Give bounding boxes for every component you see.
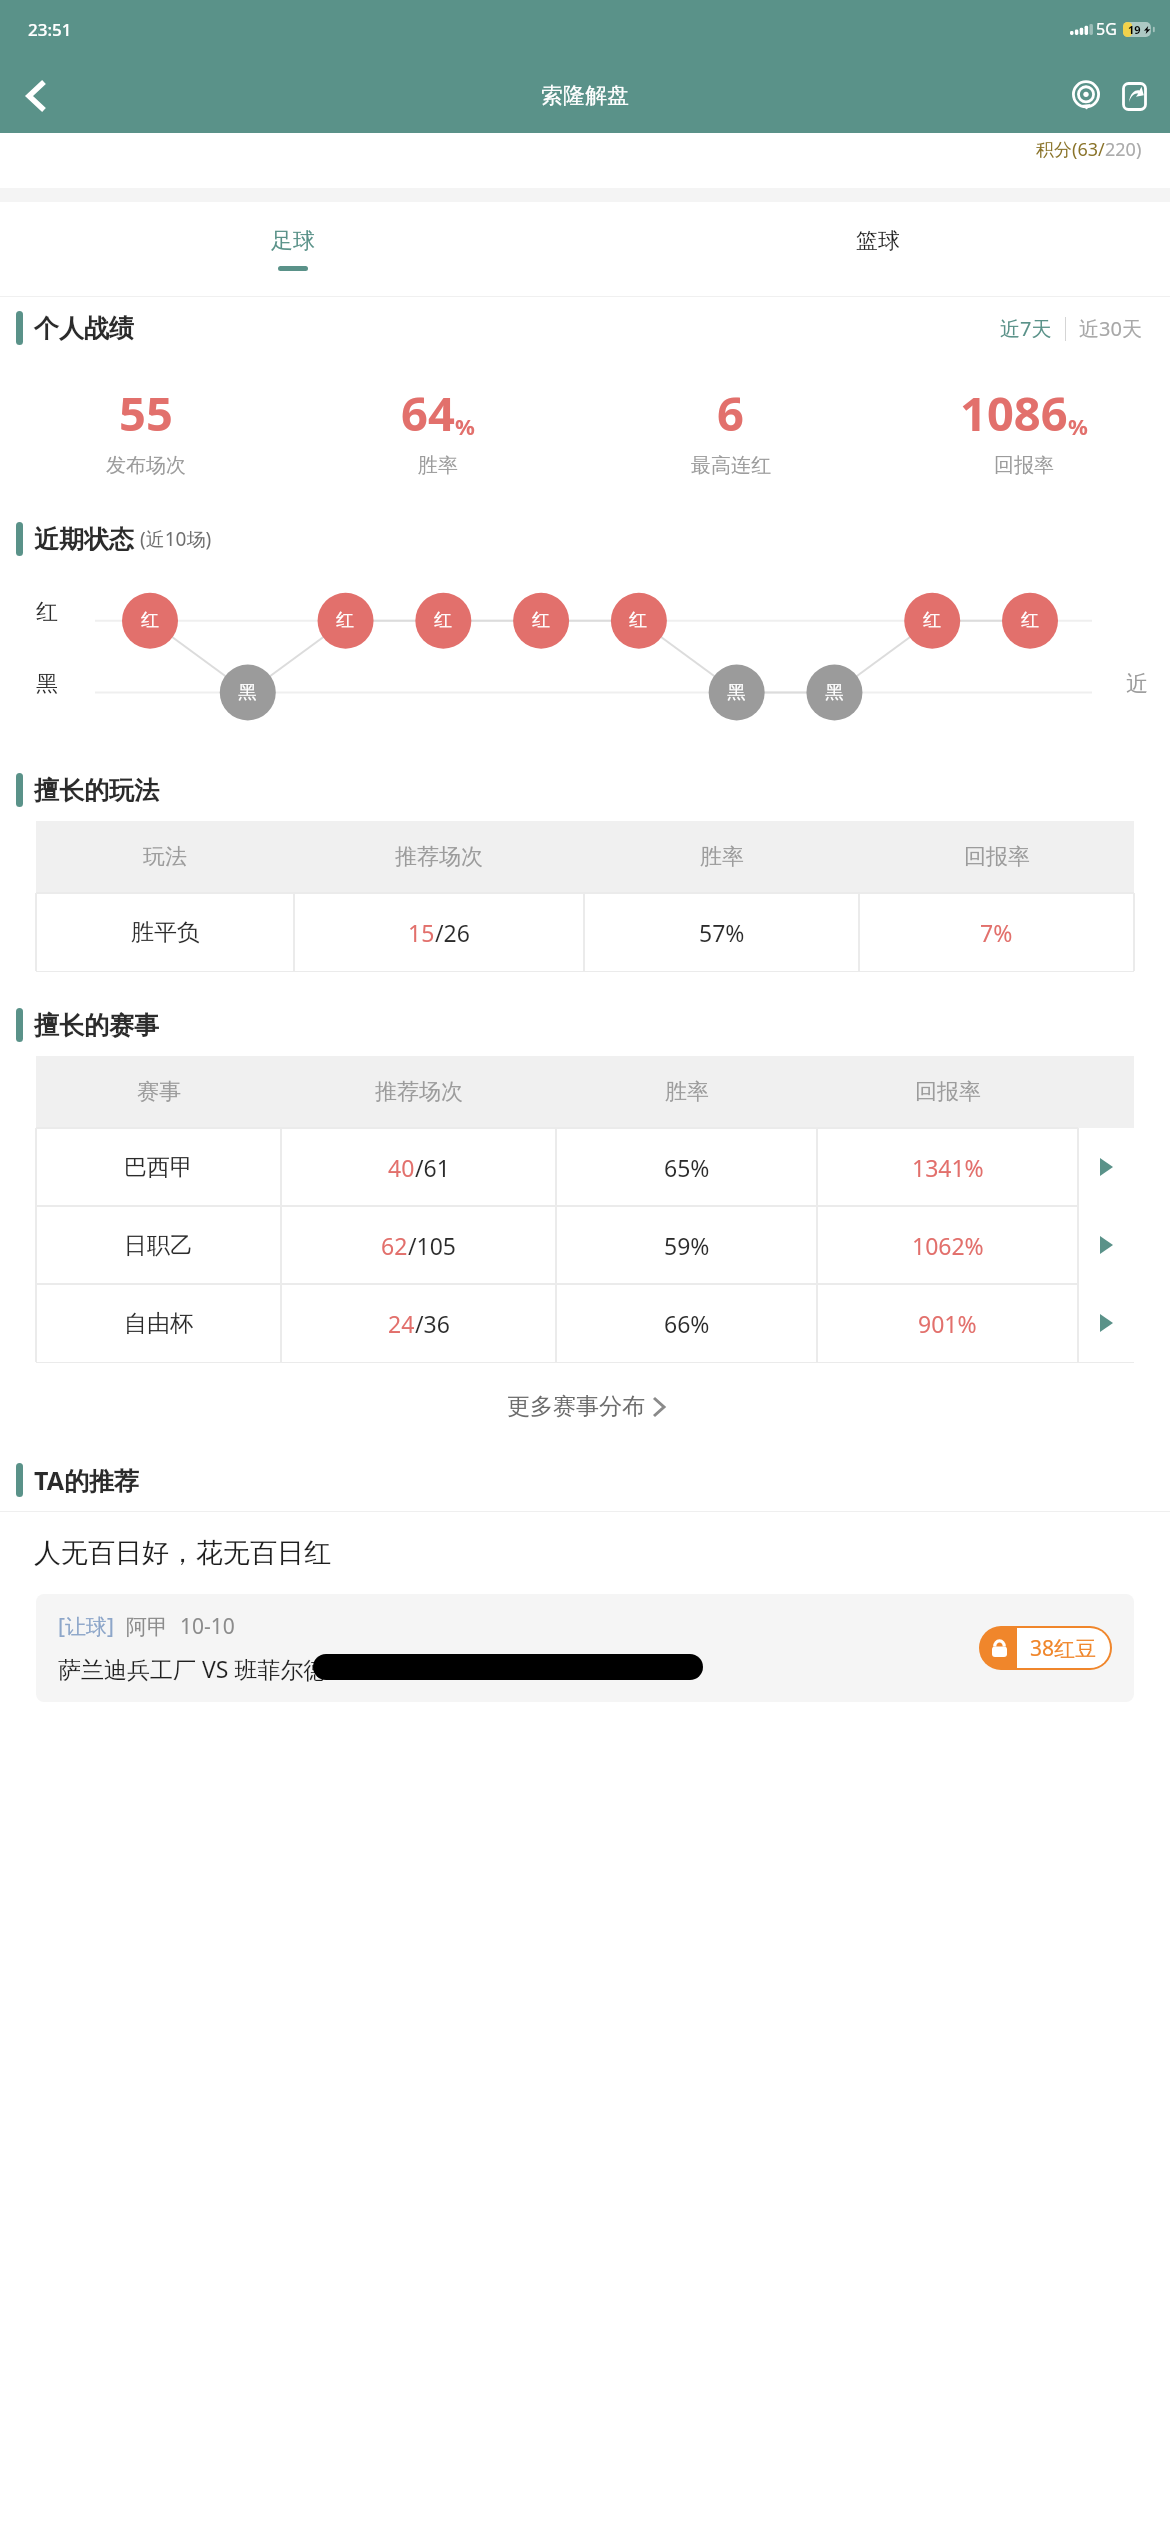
- staticText: 红: [923, 609, 941, 632]
- staticText: 220): [1105, 137, 1142, 162]
- staticText: 胜率: [700, 843, 744, 871]
- staticText: 近30天: [1079, 315, 1142, 342]
- staticText: 胜平负: [131, 918, 200, 947]
- staticText: 6: [717, 381, 744, 445]
- staticText: 55: [119, 381, 173, 445]
- staticText: /105: [408, 1230, 457, 1261]
- staticText: 萨兰迪兵工厂 VS 班菲尔德: [58, 1653, 327, 1684]
- staticText: 黑: [825, 681, 843, 704]
- staticText: 1086: [960, 381, 1068, 445]
- staticText: 5G: [1096, 18, 1117, 40]
- staticText: /36: [415, 1308, 450, 1339]
- staticText: 近期状态: [34, 524, 134, 555]
- staticText: 最高连红: [691, 453, 771, 478]
- staticText: 红: [629, 609, 647, 632]
- button[interactable]: Share: [1110, 72, 1158, 120]
- staticText: 40: [388, 1152, 415, 1183]
- staticText: 19: [1128, 22, 1141, 37]
- button[interactable]: 胜平负: [36, 893, 1134, 971]
- staticText: 擅长的赛事: [34, 1010, 159, 1041]
- staticText: 更多赛事分布: [507, 1392, 645, 1421]
- staticText: /61: [415, 1152, 450, 1183]
- staticText: %: [1068, 411, 1088, 441]
- staticText: 日职乙: [124, 1231, 193, 1260]
- button[interactable]: 近30天: [1075, 315, 1146, 342]
- staticText: 红: [36, 598, 58, 626]
- staticText: 玩法: [143, 843, 187, 871]
- staticText: 红: [141, 609, 159, 632]
- staticText: 近: [1126, 670, 1148, 698]
- staticText: 黑: [36, 670, 58, 698]
- staticText: 回报率: [994, 453, 1054, 478]
- staticText: 1341%: [912, 1152, 984, 1183]
- staticText: 7%: [980, 917, 1013, 948]
- staticText: 红: [532, 609, 550, 632]
- button[interactable]: Back: [10, 70, 62, 122]
- staticText: 胜率: [665, 1078, 709, 1106]
- staticText: 回报率: [915, 1078, 981, 1106]
- staticText: 红: [336, 609, 354, 632]
- staticText: 57%: [699, 917, 745, 948]
- staticText: 索隆解盘: [541, 82, 629, 110]
- staticText: 10-10: [180, 1612, 235, 1641]
- staticText: 901%: [918, 1308, 977, 1339]
- staticText: 阿甲: [126, 1614, 168, 1640]
- staticText: 推荐场次: [375, 1078, 463, 1106]
- staticText: /26: [435, 917, 470, 948]
- staticText: 推荐场次: [395, 843, 483, 871]
- button[interactable]: 更多赛事分布: [0, 1363, 1170, 1449]
- staticText: 篮球: [856, 227, 900, 255]
- staticText: %: [455, 411, 475, 441]
- staticText: 64: [401, 381, 455, 445]
- staticText: 1062%: [912, 1230, 984, 1261]
- button[interactable]: 巴西甲: [36, 1128, 1134, 1206]
- staticText: [让球]: [58, 1612, 114, 1641]
- staticText: 擅长的玩法: [34, 775, 159, 806]
- button[interactable]: Message: [1062, 72, 1110, 120]
- staticText: 黑: [238, 681, 256, 704]
- button[interactable]: 篮球: [585, 202, 1170, 296]
- staticText: 66%: [664, 1308, 710, 1339]
- staticText: 自由杯: [124, 1309, 193, 1338]
- staticText: 发布场次: [106, 453, 186, 478]
- staticText: (近10场): [140, 526, 212, 552]
- staticText: 05:00: [337, 1653, 396, 1684]
- staticText: 23:51: [28, 18, 72, 41]
- button[interactable]: 日职乙: [36, 1206, 1134, 1284]
- staticText: 24: [388, 1308, 415, 1339]
- staticText: 红: [1021, 609, 1039, 632]
- button[interactable]: 近7天: [996, 315, 1056, 342]
- staticText: 巴西甲: [124, 1153, 193, 1182]
- staticText: 足球: [271, 227, 315, 255]
- button[interactable]: 足球: [0, 202, 585, 296]
- staticText: 赛事: [137, 1078, 181, 1106]
- staticText: 红: [434, 609, 452, 632]
- staticText: 38红豆: [1030, 1634, 1097, 1663]
- staticText: TA的推荐: [34, 1463, 139, 1497]
- staticText: 黑: [727, 681, 745, 704]
- button[interactable]: [让球]: [36, 1594, 1134, 1702]
- staticText: 65%: [664, 1152, 710, 1183]
- staticText: 近7天: [1000, 315, 1052, 342]
- staticText: 回报率: [964, 843, 1030, 871]
- staticText: 个人战绩: [34, 313, 134, 344]
- staticText: 59%: [664, 1230, 710, 1261]
- staticText: 人无百日好，花无百日红: [34, 1536, 331, 1570]
- staticText: 积分(63/: [1036, 137, 1105, 162]
- button[interactable]: 自由杯: [36, 1284, 1134, 1362]
- staticText: 胜率: [418, 453, 458, 478]
- staticText: 15: [408, 917, 435, 948]
- staticText: 62: [381, 1230, 408, 1261]
